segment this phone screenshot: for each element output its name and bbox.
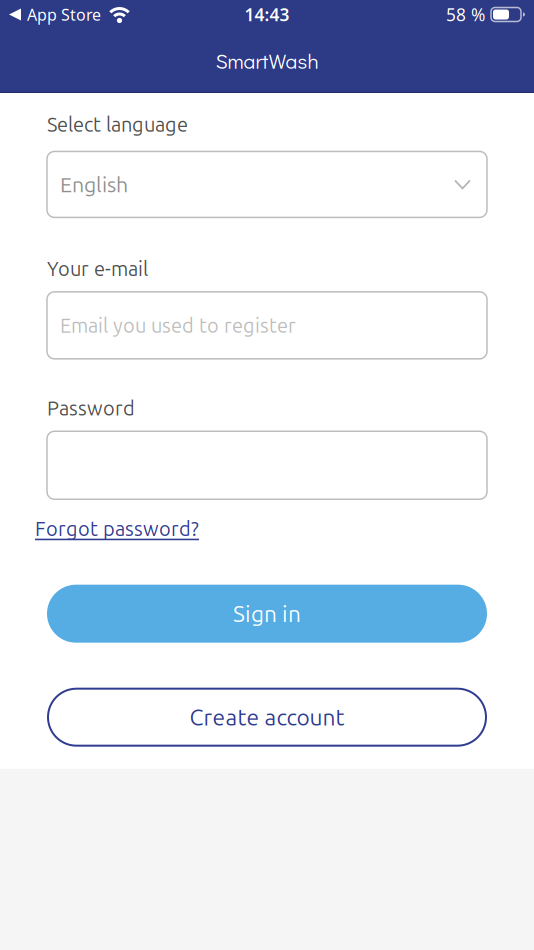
button[interactable]: Select language: English xyxy=(47,151,487,217)
button[interactable]: Sign in xyxy=(47,585,487,643)
staticText: SmartWash xyxy=(215,47,318,74)
staticText: Forgot password? xyxy=(35,517,199,540)
staticText: Sign in xyxy=(233,601,301,626)
staticText: Email you used to register xyxy=(60,314,296,336)
staticText: 14:43 xyxy=(244,3,289,26)
staticText: Select language xyxy=(47,113,188,135)
button[interactable]: Create account xyxy=(47,688,487,747)
staticText: 58 % xyxy=(446,3,485,26)
staticText: Password xyxy=(47,397,135,419)
staticText: App Store xyxy=(27,4,101,25)
staticText: Your e-mail xyxy=(47,257,148,280)
staticText: English xyxy=(60,172,128,196)
staticText: Create account xyxy=(189,704,344,730)
button[interactable]: Your e-mail xyxy=(47,292,487,359)
button[interactable]: Forgot password? xyxy=(35,517,199,540)
button[interactable]: Back to App Store xyxy=(0,4,132,25)
button[interactable]: Password xyxy=(47,431,487,499)
